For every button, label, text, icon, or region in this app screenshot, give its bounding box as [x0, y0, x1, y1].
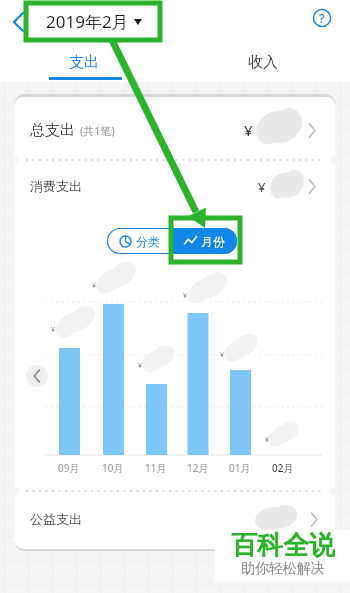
- staticText: 12月: [187, 461, 209, 475]
- staticText: ¥: [220, 350, 225, 360]
- staticText: 支出: [69, 53, 99, 72]
- button[interactable]: ?: [312, 8, 332, 28]
- staticText: ¥: [92, 281, 97, 291]
- staticText: ¥: [258, 178, 266, 196]
- button[interactable]: 分类: [107, 228, 172, 254]
- button[interactable]: 2019年2月: [30, 4, 158, 39]
- staticText: 总支出: [30, 121, 75, 140]
- staticText: 10月: [102, 461, 124, 475]
- button[interactable]: 总支出: [15, 103, 335, 158]
- button[interactable]: [26, 365, 48, 387]
- staticText: 月份: [201, 234, 225, 249]
- button[interactable]: 消费支出: [15, 163, 335, 208]
- staticText: (共1笔): [80, 123, 115, 138]
- button[interactable]: 收入: [175, 42, 350, 82]
- staticText: 01月: [229, 461, 251, 475]
- staticText: 02月: [272, 461, 294, 475]
- button[interactable]: 支出: [0, 42, 168, 82]
- staticText: 助你轻松解决: [241, 560, 325, 578]
- button[interactable]: [15, 492, 335, 549]
- staticText: 公益支出: [30, 511, 82, 527]
- staticText: 消费支出: [30, 178, 82, 194]
- staticText: 分类: [136, 234, 160, 249]
- staticText: ¥: [183, 291, 188, 301]
- staticText: 11月: [145, 461, 167, 475]
- button[interactable]: 月份: [172, 228, 237, 254]
- staticText: 2019年2月: [46, 10, 129, 33]
- staticText: 百科全说: [231, 529, 335, 560]
- staticText: ¥: [51, 325, 56, 335]
- staticText: ¥: [138, 361, 143, 371]
- staticText: 收入: [248, 53, 278, 72]
- button[interactable]: [8, 8, 30, 36]
- staticText: ?: [319, 10, 325, 26]
- staticText: ¥: [265, 435, 270, 445]
- staticText: 09月: [58, 461, 80, 475]
- staticText: ¥: [244, 120, 253, 140]
